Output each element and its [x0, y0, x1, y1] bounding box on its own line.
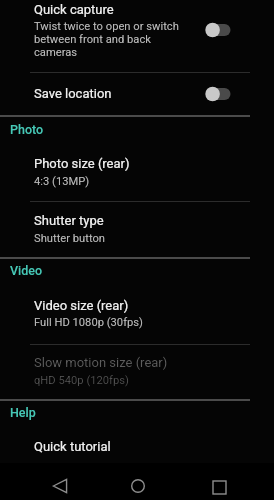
staticText: Video — [10, 263, 43, 278]
button[interactable] — [0, 203, 274, 255]
staticText: Help — [10, 405, 36, 420]
button[interactable]: Home — [115, 468, 161, 500]
button[interactable] — [0, 73, 274, 113]
button[interactable] — [0, 0, 274, 64]
staticText: qHD 540p (120fps) — [34, 374, 129, 387]
button[interactable]: Toggle switch — [196, 80, 246, 108]
staticText: Video size (rear) — [34, 298, 129, 313]
button[interactable]: Back — [37, 468, 83, 500]
button[interactable] — [0, 346, 274, 398]
staticText: Photo size (rear) — [34, 156, 130, 171]
staticText: Full HD 1080p (30fps) — [34, 316, 143, 329]
staticText: Shutter type — [34, 213, 104, 228]
button[interactable]: Toggle switch — [196, 16, 246, 44]
button[interactable] — [0, 143, 274, 198]
staticText: Save location — [34, 86, 112, 101]
staticText: Quick capture — [34, 2, 114, 17]
staticText: Photo — [10, 122, 44, 137]
button[interactable]: Recent apps — [196, 469, 242, 500]
staticText: Slow motion size (rear) — [34, 355, 168, 370]
staticText: Shutter button — [34, 232, 106, 245]
button[interactable] — [0, 286, 274, 341]
button[interactable] — [0, 428, 274, 463]
staticText: 4:3 (13MP) — [34, 175, 90, 188]
staticText: Quick tutorial — [34, 439, 111, 454]
staticText: Twist twice to open or switch between fr… — [34, 20, 179, 59]
